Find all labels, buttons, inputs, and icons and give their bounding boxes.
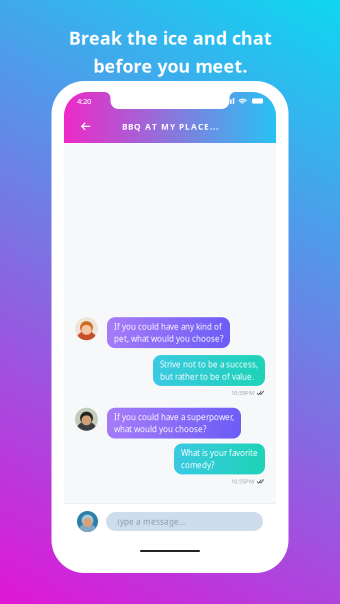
- staticText: 10:55PM: [231, 477, 254, 485]
- staticText: 10:55PM: [231, 389, 254, 397]
- staticText: Strive not to be a success, but rather t…: [160, 359, 258, 382]
- staticText: Type a message...: [116, 516, 185, 527]
- staticText: 4:20: [77, 96, 91, 106]
- staticText: If you could have any kind of pet, what …: [114, 321, 223, 344]
- button[interactable]: Type a message...: [106, 512, 263, 531]
- button[interactable]: Back: [73, 115, 99, 137]
- staticText: What is your favorite comedy?: [181, 448, 258, 470]
- staticText: Break the ice and chat before you meet.: [68, 26, 271, 78]
- staticText: If you could have a superpower, what wou…: [114, 412, 234, 434]
- staticText: B B Q A T M Y P L A C E . . .: [122, 121, 218, 132]
